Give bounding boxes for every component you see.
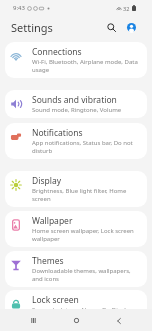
staticText: Themes: [32, 255, 64, 267]
staticText: Brightness, Blue light filter, Home scre…: [32, 187, 139, 203]
staticText: Downloadable themes, wallpapers, and ico…: [32, 267, 139, 283]
staticText: Settings: [11, 20, 53, 35]
button[interactable]: Connections: [5, 42, 147, 78]
staticText: 32: [123, 5, 130, 12]
staticText: Wallpaper: [32, 215, 73, 227]
staticText: Home screen wallpaper, Lock screen wallp…: [32, 227, 139, 243]
staticText: Connections: [32, 46, 82, 58]
staticText: Sound mode, Ringtone, Volume: [32, 106, 122, 114]
button[interactable]: Sounds and vibration: [5, 90, 147, 118]
staticText: Wi-Fi, Bluetooth, Airplane mode, Data us…: [32, 58, 139, 74]
staticText: Lock screen: [32, 294, 79, 306]
button[interactable]: Notifications: [5, 123, 147, 159]
button[interactable]: Themes: [5, 251, 147, 287]
button[interactable]: Home: [68, 312, 85, 329]
staticText: Display: [32, 175, 61, 187]
staticText: App notifications, Status bar, Do not di…: [32, 139, 139, 155]
button[interactable]: Wallpaper: [5, 211, 147, 247]
button[interactable]: Recent apps: [25, 312, 42, 329]
button[interactable]: Search: [102, 18, 120, 36]
staticText: Sounds and vibration: [32, 94, 117, 106]
staticText: Notifications: [32, 127, 83, 139]
button[interactable]: Account: [122, 18, 140, 36]
button[interactable]: Lock screen: [5, 290, 147, 318]
button[interactable]: Back: [110, 312, 127, 329]
staticText: 9:43: [13, 4, 25, 12]
button[interactable]: Display: [5, 171, 147, 207]
staticText: Screen lock type, Always On Display: [32, 306, 133, 314]
